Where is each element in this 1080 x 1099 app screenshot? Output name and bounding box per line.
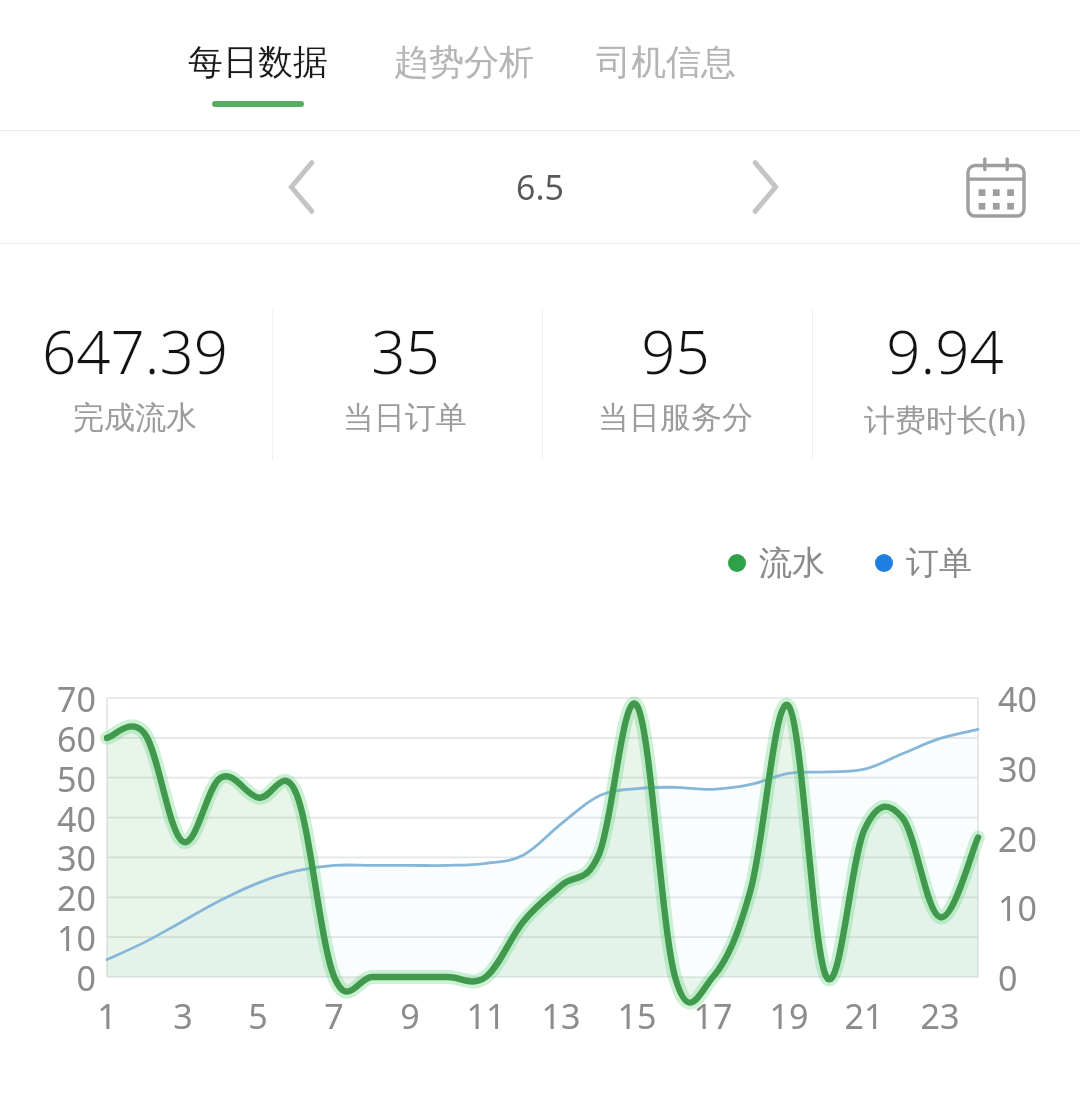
staticText: 9 xyxy=(380,993,440,1039)
button[interactable]: Previous day xyxy=(262,148,340,226)
staticText: 完成流水 xyxy=(73,398,197,437)
staticText: 20 xyxy=(26,875,96,921)
button[interactable]: 每日数据 xyxy=(188,0,328,115)
staticText: 趋势分析 xyxy=(394,40,534,84)
staticText: 9.94 xyxy=(886,310,1004,392)
staticText: 23 xyxy=(910,993,970,1039)
staticText: 60 xyxy=(26,716,96,762)
button[interactable]: Pick date xyxy=(954,145,1038,229)
staticText: 13 xyxy=(531,993,591,1039)
staticText: 647.39 xyxy=(42,310,228,392)
staticText: 0 xyxy=(998,955,1018,1001)
staticText: 95 xyxy=(641,310,710,392)
staticText: 11 xyxy=(456,993,516,1039)
staticText: 6.5 xyxy=(516,164,565,210)
button[interactable]: 订单 xyxy=(875,542,972,584)
staticText: 50 xyxy=(26,756,96,802)
staticText: 当日订单 xyxy=(343,398,467,437)
staticText: 订单 xyxy=(906,542,972,584)
staticText: 15 xyxy=(607,993,667,1039)
staticText: 7 xyxy=(304,993,364,1039)
staticText: 5 xyxy=(228,993,288,1039)
staticText: 21 xyxy=(834,993,894,1039)
button[interactable]: 趋势分析 xyxy=(394,0,534,115)
staticText: 40 xyxy=(26,796,96,842)
button[interactable]: 35 xyxy=(270,310,540,437)
staticText: 40 xyxy=(998,676,1037,722)
staticText: 30 xyxy=(998,746,1037,792)
staticText: 流水 xyxy=(759,542,825,584)
staticText: 3 xyxy=(153,993,213,1039)
button[interactable]: 95 xyxy=(540,310,810,437)
staticText: 17 xyxy=(683,993,743,1039)
button[interactable]: Next day xyxy=(727,148,805,226)
staticText: 70 xyxy=(26,676,96,722)
button[interactable]: 647.39 xyxy=(0,310,270,437)
staticText: 当日服务分 xyxy=(598,398,753,437)
button[interactable]: 流水 xyxy=(728,542,825,584)
staticText: 每日数据 xyxy=(188,40,328,84)
staticText: 10 xyxy=(998,885,1037,931)
button[interactable]: 司机信息 xyxy=(596,0,736,115)
button[interactable]: 9.94 xyxy=(810,310,1080,440)
staticText: 司机信息 xyxy=(596,40,736,84)
staticText: 0 xyxy=(26,955,96,1001)
staticText: 19 xyxy=(759,993,819,1039)
staticText: 计费时长(h) xyxy=(864,398,1026,440)
staticText: 10 xyxy=(26,915,96,961)
staticText: 20 xyxy=(998,816,1037,862)
staticText: 35 xyxy=(371,310,440,392)
staticText: 30 xyxy=(26,835,96,881)
staticText: 1 xyxy=(77,993,137,1039)
